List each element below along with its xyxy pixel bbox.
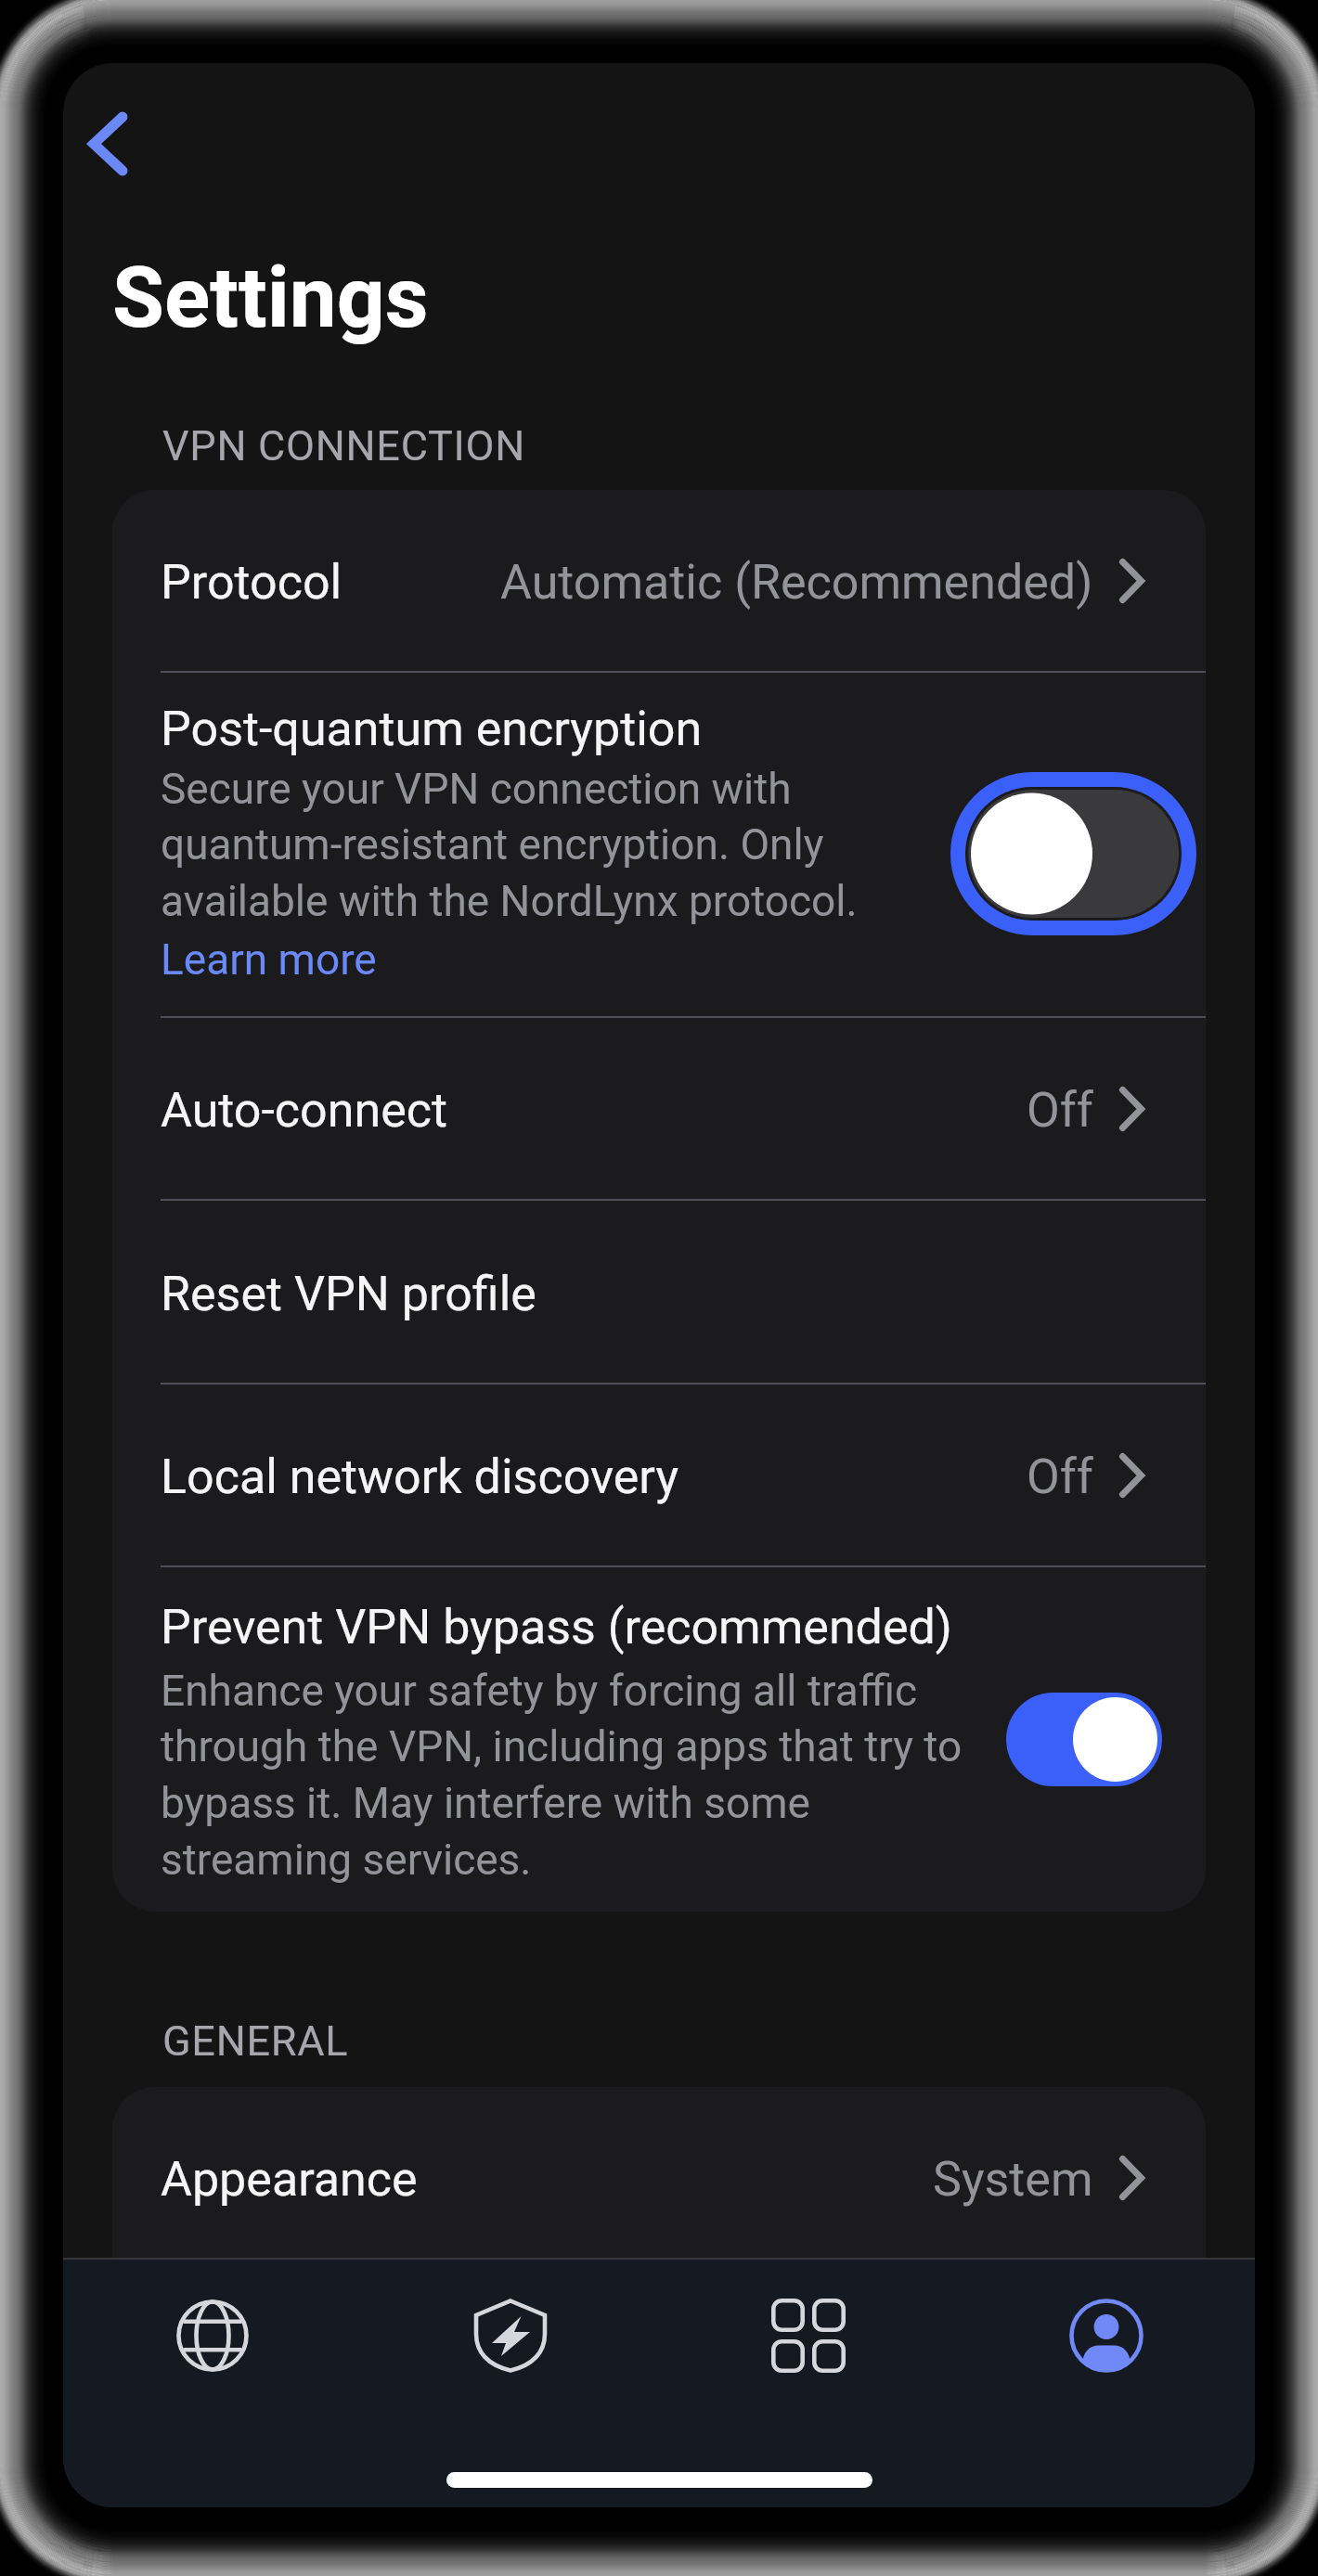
button[interactable]: Servers (63, 2260, 361, 2412)
staticText: GENERAL (162, 2016, 349, 2066)
staticText: Protocol (161, 554, 342, 611)
button[interactable]: Prevent VPN bypass, on (1006, 1693, 1162, 1786)
staticText: Automatic (Recommended) (500, 554, 1093, 611)
button[interactable]: Appearance (112, 2087, 1206, 2268)
button[interactable]: Auto-connect (112, 1018, 1206, 1199)
staticText: Off (1027, 1082, 1093, 1139)
staticText: Enhance your safety by forcing all traff… (161, 1666, 981, 1886)
button[interactable]: Post-quantum encryption (112, 673, 1206, 1016)
button[interactable]: Prevent VPN bypass (recommended) (112, 1567, 1206, 1912)
button[interactable]: Learn more (161, 934, 377, 985)
button[interactable]: Threat protection (361, 2260, 659, 2412)
staticText: Local network discovery (161, 1449, 679, 1505)
button[interactable]: Post-quantum encryption, off (950, 772, 1196, 935)
button[interactable]: Back (63, 63, 202, 230)
staticText: Appearance (161, 2151, 418, 2208)
staticText: Auto-connect (161, 1082, 447, 1139)
staticText: Reset VPN profile (161, 1266, 536, 1322)
staticText: System (933, 2151, 1093, 2208)
button[interactable]: Local network discovery (112, 1385, 1206, 1565)
button[interactable]: Protocol (112, 490, 1206, 671)
button[interactable]: Account (957, 2260, 1255, 2412)
staticText: Notifications (161, 2334, 435, 2390)
staticText: Post-quantum encryption (161, 701, 996, 757)
staticText: VPN CONNECTION (162, 421, 525, 470)
button[interactable]: More tools (659, 2260, 957, 2412)
staticText: Off (1027, 1449, 1093, 1505)
button[interactable]: Reset VPN profile (112, 1201, 1206, 1383)
staticText: Prevent VPN bypass (recommended) (161, 1599, 996, 1655)
button[interactable]: Notifications (112, 2270, 1206, 2451)
staticText: Settings (112, 249, 429, 348)
staticText: Secure your VPN connection with quantum-… (161, 764, 981, 927)
